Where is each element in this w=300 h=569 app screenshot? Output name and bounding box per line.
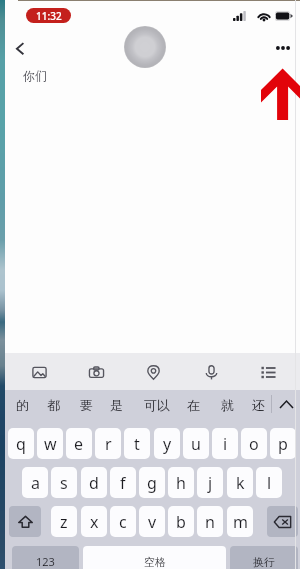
button[interactable]: Location [135, 354, 171, 390]
staticText: u [191, 433, 201, 455]
button[interactable]: 123 [12, 546, 79, 569]
button[interactable]: Expand candidates [274, 390, 299, 418]
staticText: i [223, 433, 228, 455]
button[interactable]: o [241, 428, 267, 459]
staticText: t [134, 433, 140, 455]
staticText: y [163, 433, 172, 455]
staticText: 还 [252, 397, 265, 413]
button[interactable]: 还 [241, 391, 275, 418]
button[interactable]: n [197, 506, 223, 537]
staticText: b [176, 511, 186, 533]
button[interactable]: 都 [36, 391, 70, 418]
button[interactable]: s [51, 467, 77, 498]
button[interactable]: e [66, 428, 92, 459]
staticText: 可以 [144, 397, 170, 413]
staticText: j [208, 472, 213, 494]
button[interactable]: Contact avatar [124, 26, 166, 68]
button[interactable]: 要 [69, 391, 103, 418]
staticText: a [31, 472, 40, 494]
staticText: x [90, 511, 99, 533]
button[interactable]: t [124, 428, 150, 459]
staticText: p [278, 433, 288, 455]
button[interactable]: z [51, 506, 77, 537]
staticText: 123 [36, 554, 55, 569]
staticText: 11:32 [36, 9, 62, 23]
staticText: 是 [110, 397, 123, 413]
button[interactable]: i [212, 428, 238, 459]
button[interactable]: l [256, 467, 282, 498]
staticText: c [119, 511, 127, 533]
staticText: n [205, 511, 215, 533]
button[interactable]: 就 [210, 391, 244, 418]
button[interactable]: g [139, 467, 165, 498]
staticText: g [147, 472, 157, 494]
button[interactable]: Gallery [21, 354, 57, 390]
staticText: 空格 [144, 555, 166, 569]
button[interactable]: m [227, 506, 253, 537]
staticText: 你们 [23, 68, 47, 83]
staticText: 在 [187, 397, 200, 413]
button[interactable]: v [139, 506, 165, 537]
button[interactable]: q [8, 428, 34, 459]
button[interactable]: x [81, 506, 107, 537]
button[interactable]: More options [270, 35, 296, 61]
button[interactable]: r [95, 428, 121, 459]
staticText: z [60, 511, 68, 533]
staticText: 换行 [253, 555, 275, 569]
staticText: 的 [16, 397, 29, 413]
button[interactable]: y [154, 428, 180, 459]
button[interactable]: b [168, 506, 194, 537]
staticText: m [233, 511, 248, 533]
button[interactable]: k [227, 467, 253, 498]
button[interactable]: Camera [78, 354, 114, 390]
button[interactable]: f [110, 467, 136, 498]
button[interactable]: d [81, 467, 107, 498]
button[interactable]: 可以 [140, 391, 174, 418]
button[interactable]: p [270, 428, 296, 459]
staticText: h [176, 472, 186, 494]
button[interactable]: h [168, 467, 194, 498]
staticText: l [267, 472, 272, 494]
staticText: w [44, 433, 57, 455]
button[interactable]: More [250, 354, 286, 390]
staticText: s [60, 472, 68, 494]
staticText: d [89, 472, 99, 494]
button[interactable]: u [183, 428, 209, 459]
button[interactable]: Back [7, 35, 33, 61]
staticText: k [236, 472, 245, 494]
staticText: v [148, 511, 157, 533]
button[interactable]: j [197, 467, 223, 498]
staticText: 都 [47, 397, 60, 413]
button[interactable]: 空格 [83, 546, 226, 569]
button[interactable]: Backspace [267, 506, 298, 537]
button[interactable]: 的 [5, 391, 39, 418]
staticText: 就 [221, 397, 234, 413]
button[interactable]: c [110, 506, 136, 537]
staticText: q [16, 433, 26, 455]
staticText: 要 [80, 397, 93, 413]
staticText: e [74, 433, 84, 455]
button[interactable]: 在 [176, 391, 210, 418]
staticText: f [120, 472, 126, 494]
button[interactable]: w [37, 428, 63, 459]
button[interactable]: a [22, 467, 48, 498]
button[interactable]: 是 [99, 391, 133, 418]
staticText: r [105, 433, 112, 455]
button[interactable]: Voice message [193, 354, 229, 390]
button[interactable]: 换行 [230, 546, 298, 569]
staticText: o [249, 433, 259, 455]
button[interactable]: Shift [9, 506, 41, 537]
